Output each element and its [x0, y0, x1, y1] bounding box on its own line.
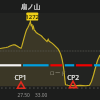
button[interactable]: Course elevation profile [0, 0, 100, 100]
